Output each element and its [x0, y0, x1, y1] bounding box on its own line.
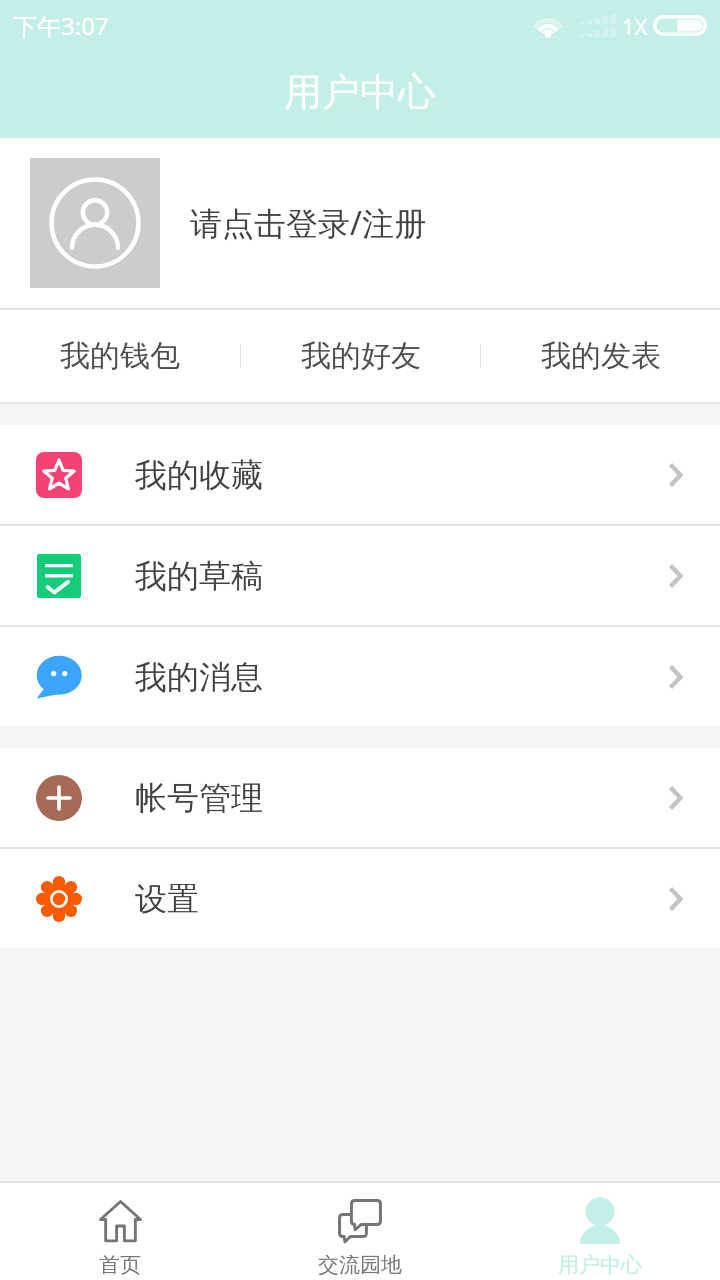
button[interactable]: 我的消息	[0, 627, 720, 726]
button[interactable]: 交流园地	[240, 1183, 480, 1280]
button[interactable]: 首页	[0, 1183, 240, 1280]
button[interactable]: 请点击登录/注册	[0, 138, 720, 308]
staticText: 我的钱包	[60, 337, 180, 375]
staticText: 帐号管理	[135, 778, 263, 818]
staticText: 用户中心	[558, 1252, 642, 1278]
staticText: 1X	[622, 11, 648, 41]
button[interactable]: 我的草稿	[0, 526, 720, 625]
staticText: 首页	[99, 1252, 141, 1278]
staticText: 我的消息	[135, 657, 263, 697]
staticText: 设置	[135, 879, 199, 919]
button[interactable]: 我的收藏	[0, 425, 720, 524]
button[interactable]: 我的发表	[481, 310, 720, 402]
button[interactable]: 我的好友	[241, 310, 480, 402]
staticText: 交流园地	[318, 1252, 402, 1278]
staticText: 下午3:07	[13, 9, 109, 42]
button[interactable]: 设置	[0, 849, 720, 948]
button[interactable]: 用户中心	[480, 1183, 720, 1280]
staticText: 我的发表	[541, 337, 661, 375]
button[interactable]: 帐号管理	[0, 748, 720, 847]
button[interactable]: 我的钱包	[0, 310, 240, 402]
staticText: 用户中心	[284, 68, 436, 116]
staticText: 我的收藏	[135, 455, 263, 495]
staticText: 我的好友	[301, 337, 421, 375]
staticText: 请点击登录/注册	[190, 201, 426, 245]
staticText: 我的草稿	[135, 556, 263, 596]
